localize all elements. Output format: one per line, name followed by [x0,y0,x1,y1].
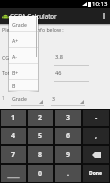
staticText: B [12,82,16,89]
staticText: Please fill the info below : [2,26,64,33]
staticText: 1 [11,113,16,123]
staticText: 8 [38,150,43,160]
staticText: 6 [66,131,71,141]
staticText: 4 [11,131,16,141]
button[interactable]: Symbols [1,165,26,182]
staticText: . [67,169,69,179]
button[interactable]: Backspace [83,146,109,163]
button[interactable]: B+ [9,64,38,80]
staticText: 2 [38,113,43,123]
button[interactable]: 3 [51,92,85,105]
staticText: 3.8 [55,53,63,61]
button[interactable]: 9 [55,146,81,163]
staticText: Done [89,170,103,177]
button[interactable]: 5 [28,128,53,144]
staticText: , [95,131,97,141]
staticText: A- [12,53,17,60]
staticText: 7 [11,150,16,160]
button[interactable]: B [9,80,38,91]
button[interactable]: 0 [28,165,53,182]
button[interactable]: 4 [1,128,26,144]
staticText: - [95,113,98,123]
button[interactable]: 3 [55,110,81,126]
staticText: 46 [55,69,62,77]
button[interactable]: , [83,128,109,144]
button[interactable]: 7 [1,146,26,163]
staticText: 5 [38,131,43,141]
staticText: Grade [12,21,27,28]
button[interactable]: More options [98,8,110,24]
button[interactable]: A+ [9,32,38,48]
button[interactable]: 6 [55,128,81,144]
button[interactable]: 2 [28,110,53,126]
button[interactable]: 1 [1,110,26,126]
button[interactable]: 8 [28,146,53,163]
button[interactable]: A- [9,48,38,64]
staticText: Total : [2,69,17,76]
staticText: 1 [2,95,5,101]
staticText: 0 [38,169,43,179]
button[interactable]: Grade [11,92,44,105]
staticText: A+ [12,37,19,44]
button[interactable]: Grade [9,16,38,32]
staticText: CGPA Calculator [10,12,57,20]
staticText: B+ [12,69,19,76]
button[interactable]: - [83,110,109,126]
button[interactable]: Done [83,165,109,182]
staticText: CGPA : [2,54,18,61]
staticText: 3 [52,95,55,102]
staticText: 10:13 [92,0,108,8]
button[interactable]: . [55,165,81,182]
staticText: 9 [66,150,71,160]
staticText: 3 [66,113,71,123]
staticText: Grade [12,95,27,102]
